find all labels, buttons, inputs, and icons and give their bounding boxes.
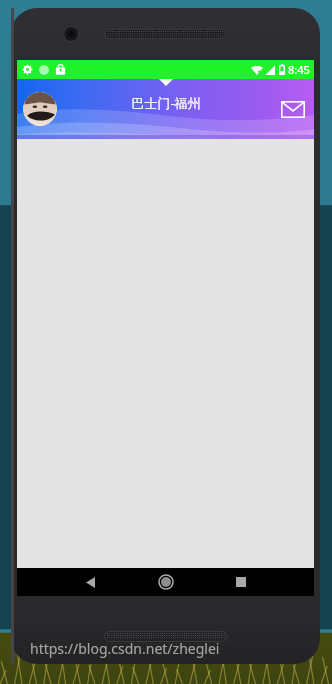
button[interactable]: 巴士门-福州 [123, 92, 209, 114]
staticText: https://blog.csdn.net/zheglei [30, 639, 220, 658]
button[interactable]: Messages [278, 96, 308, 122]
button[interactable]: Recent apps [226, 568, 256, 596]
staticText: 8:45 [288, 62, 310, 77]
button[interactable]: Profile [23, 92, 57, 126]
button[interactable]: Home [151, 568, 181, 596]
staticText: 巴士门-福州 [131, 94, 201, 112]
button[interactable]: Back [75, 568, 105, 596]
